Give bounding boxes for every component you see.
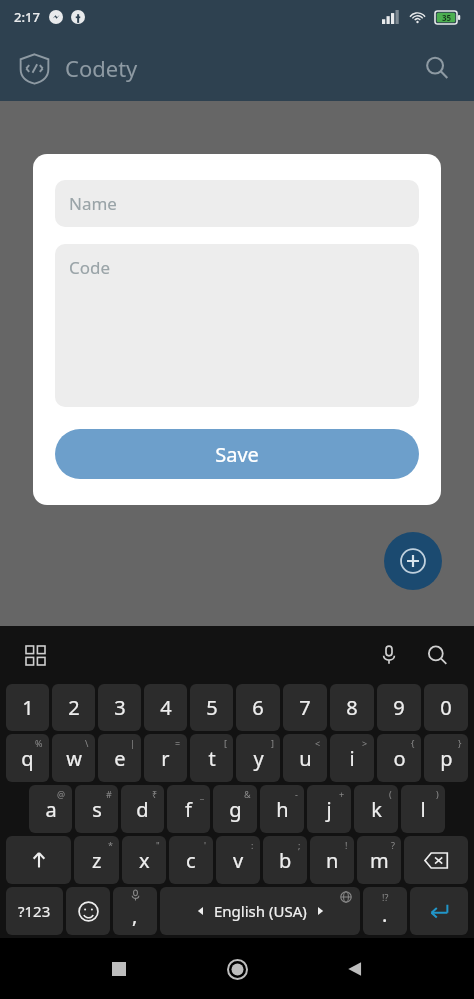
button[interactable]: t	[190, 734, 233, 782]
staticText: q	[21, 745, 34, 772]
staticText: *	[108, 839, 113, 851]
staticText: )	[436, 788, 439, 800]
staticText: c	[186, 847, 196, 874]
button[interactable]: Enter	[410, 887, 468, 935]
button[interactable]: Voice input	[370, 636, 408, 674]
staticText: k	[371, 796, 382, 823]
button[interactable]: 0	[424, 684, 468, 731]
button[interactable]: e	[98, 734, 141, 782]
staticText: 0	[440, 694, 452, 721]
button[interactable]: ?123	[6, 887, 63, 935]
button[interactable]: 6	[236, 684, 280, 731]
staticText: 6	[252, 694, 264, 721]
button[interactable]: Add	[384, 532, 442, 590]
button[interactable]: .	[363, 887, 407, 935]
staticText: !	[345, 839, 348, 851]
button[interactable]: x	[122, 836, 166, 884]
button[interactable]: Space, English (USA)	[160, 887, 360, 935]
button[interactable]: 2	[52, 684, 95, 731]
button[interactable]: u	[283, 734, 327, 782]
staticText: %	[35, 737, 43, 749]
staticText: Name	[69, 192, 117, 215]
button[interactable]: 7	[283, 684, 327, 731]
button[interactable]: Home	[213, 945, 261, 993]
button[interactable]: Shift	[6, 836, 71, 884]
staticText: :	[251, 839, 254, 851]
button[interactable]: Name	[55, 180, 419, 227]
staticText: }	[458, 737, 462, 749]
staticText: z	[92, 847, 102, 874]
button[interactable]: a	[29, 785, 72, 833]
button[interactable]: n	[310, 836, 354, 884]
button[interactable]: ,	[113, 887, 157, 935]
button[interactable]: z	[74, 836, 119, 884]
staticText: x	[139, 847, 150, 874]
button[interactable]: Keyboard options	[18, 638, 52, 672]
staticText: Save	[215, 441, 259, 468]
staticText: 9	[393, 694, 405, 721]
staticText: 7	[299, 694, 311, 721]
staticText: 35	[442, 12, 452, 23]
staticText: g	[229, 796, 242, 823]
button[interactable]: d	[121, 785, 164, 833]
staticText: >	[362, 737, 368, 749]
staticText: @	[57, 788, 66, 800]
button[interactable]: o	[377, 734, 421, 782]
button[interactable]: r	[144, 734, 187, 782]
staticText: -	[295, 788, 298, 800]
staticText: j	[326, 796, 332, 823]
staticText: d	[136, 796, 149, 823]
staticText: w	[66, 745, 82, 772]
button[interactable]: l	[401, 785, 445, 833]
staticText: b	[279, 847, 292, 874]
button[interactable]: 3	[98, 684, 141, 731]
staticText: "	[156, 839, 160, 851]
button[interactable]: Emoji	[66, 887, 110, 935]
staticText: 8	[346, 694, 358, 721]
button[interactable]: q	[6, 734, 49, 782]
button[interactable]: c	[169, 836, 213, 884]
button[interactable]: p	[424, 734, 468, 782]
staticText: o	[393, 745, 406, 772]
button[interactable]: 9	[377, 684, 421, 731]
staticText: n	[326, 847, 339, 874]
staticText: i	[349, 745, 355, 772]
staticText: [	[224, 737, 227, 749]
staticText: ₹	[152, 788, 158, 800]
button[interactable]: 1	[6, 684, 49, 731]
button[interactable]: g	[213, 785, 257, 833]
button[interactable]: h	[260, 785, 304, 833]
staticText: (	[389, 788, 392, 800]
button[interactable]: y	[236, 734, 280, 782]
button[interactable]: j	[307, 785, 351, 833]
button[interactable]: 4	[144, 684, 187, 731]
staticText: v	[233, 847, 244, 874]
button[interactable]: Save	[55, 429, 419, 479]
button[interactable]: w	[52, 734, 95, 782]
button[interactable]: Search	[415, 46, 459, 90]
staticText: !?	[382, 891, 389, 903]
staticText: l	[420, 796, 426, 823]
button[interactable]: f	[167, 785, 210, 833]
staticText: t	[208, 745, 216, 772]
button[interactable]: Back	[331, 945, 379, 993]
button[interactable]: v	[216, 836, 260, 884]
button[interactable]: i	[330, 734, 374, 782]
button[interactable]: 5	[190, 684, 233, 731]
button[interactable]	[15, 49, 53, 87]
staticText: <	[315, 737, 321, 749]
button[interactable]: Backspace	[404, 836, 468, 884]
staticText: m	[370, 847, 389, 874]
button[interactable]: Code	[55, 244, 419, 407]
button[interactable]: Search	[418, 636, 456, 674]
staticText: y	[253, 745, 264, 772]
button[interactable]: k	[354, 785, 398, 833]
button[interactable]: Recent apps	[95, 945, 143, 993]
button[interactable]: s	[75, 785, 118, 833]
button[interactable]: m	[357, 836, 401, 884]
button[interactable]: b	[263, 836, 307, 884]
staticText: =	[175, 737, 181, 749]
staticText: .	[382, 901, 388, 928]
button[interactable]: 8	[330, 684, 374, 731]
staticText: '	[204, 839, 207, 851]
